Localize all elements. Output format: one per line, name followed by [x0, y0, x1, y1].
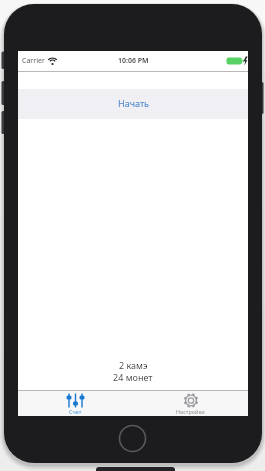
button[interactable]: Настройки — [133, 391, 248, 416]
button[interactable]: Начать — [18, 89, 248, 119]
staticText: Начать — [118, 97, 149, 109]
staticText: 10:06 PM — [118, 56, 149, 66]
staticText: Carrier — [22, 56, 45, 66]
staticText: Счет — [69, 408, 82, 415]
staticText: 2 камэ — [119, 359, 148, 371]
button[interactable]: Счет — [18, 391, 133, 416]
staticText: Настройки — [176, 408, 205, 415]
staticText: 24 монет — [113, 371, 153, 383]
